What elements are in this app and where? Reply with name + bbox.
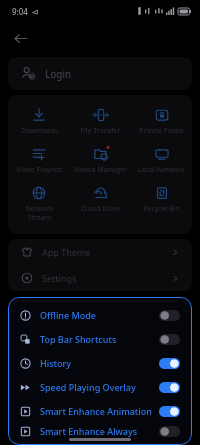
staticText: Video Playlists: [16, 165, 63, 175]
staticText: Offline Mode: [40, 309, 97, 321]
button[interactable]: Off: [159, 334, 180, 345]
button[interactable]: Speed Playing Overlay: [8, 375, 192, 399]
button[interactable]: Network Stream: [8, 180, 70, 227]
staticText: Speed Playing Overlay: [40, 381, 136, 393]
button[interactable]: File Transfer: [70, 102, 131, 141]
button[interactable]: On: [159, 406, 180, 417]
button[interactable]: Back: [6, 24, 34, 52]
staticText: App Theme: [42, 246, 91, 258]
staticText: Local Network: [138, 165, 185, 175]
button[interactable]: Recycle Bin: [131, 180, 192, 219]
staticText: Top Bar Shortcuts: [40, 333, 117, 345]
button[interactable]: Off: [159, 310, 180, 321]
button[interactable]: History: [8, 351, 192, 375]
button[interactable]: On: [159, 382, 180, 393]
button[interactable]: Smart Enhance Animation: [8, 399, 192, 423]
button[interactable]: Downloads: [8, 102, 70, 141]
button[interactable]: Private Folder: [131, 102, 192, 141]
staticText: Private Folder: [139, 126, 185, 136]
staticText: Smart Enhance Animation: [40, 405, 152, 417]
button[interactable]: Smart Enhance Always: [8, 423, 192, 439]
button[interactable]: Video Playlists: [8, 141, 70, 180]
button[interactable]: Settings: [8, 265, 192, 291]
button[interactable]: Local Network: [131, 141, 192, 180]
staticText: Cloud Drive: [81, 204, 120, 214]
staticText: History: [40, 357, 72, 369]
button[interactable]: Login: [8, 57, 192, 90]
button[interactable]: Top Bar Shortcuts: [8, 327, 192, 351]
button[interactable]: On: [159, 358, 180, 369]
button[interactable]: App Theme: [8, 239, 192, 265]
staticText: File Transfer: [80, 126, 121, 136]
staticText: 9:04: [12, 6, 28, 17]
staticText: Settings: [42, 272, 77, 284]
button[interactable]: Offline Mode: [8, 303, 192, 327]
staticText: Login: [45, 67, 72, 81]
staticText: Network Stream: [25, 204, 54, 222]
button[interactable]: Media Manager: [70, 141, 131, 180]
button[interactable]: Cloud Drive: [70, 180, 131, 219]
staticText: Media Manager: [75, 165, 127, 175]
staticText: Downloads: [21, 126, 58, 136]
staticText: Smart Enhance Always: [40, 425, 138, 437]
button[interactable]: Off: [159, 426, 180, 437]
staticText: Recycle Bin: [143, 204, 180, 214]
